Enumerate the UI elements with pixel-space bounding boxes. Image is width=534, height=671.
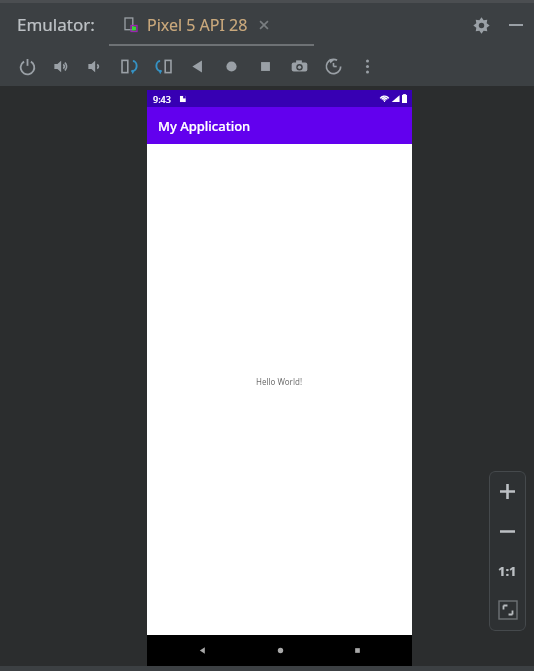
button[interactable]: Close tab (257, 18, 271, 32)
button[interactable]: Rotate left (112, 49, 146, 83)
button[interactable]: Settings (466, 10, 496, 40)
button[interactable]: 1:1 (489, 551, 526, 591)
button[interactable]: Overview (248, 49, 282, 83)
button[interactable]: Home (214, 49, 248, 83)
button[interactable]: Volume down (78, 49, 112, 83)
button[interactable]: Power (10, 49, 44, 83)
button[interactable]: Back (180, 635, 224, 666)
button[interactable]: Recents (335, 635, 379, 666)
button[interactable]: Volume up (44, 49, 78, 83)
button[interactable]: Zoom in (489, 471, 526, 511)
staticText: Pixel 5 API 28 (147, 14, 248, 36)
staticText: 1:1 (498, 562, 517, 580)
button[interactable]: More (350, 49, 384, 83)
button[interactable]: Back (180, 49, 214, 83)
button[interactable]: Pixel 5 API 28 (121, 8, 275, 42)
button[interactable]: Screenshot (282, 49, 316, 83)
button[interactable]: Zoom out (489, 511, 526, 551)
button[interactable]: Rotate right (146, 49, 180, 83)
staticText: My Application (158, 117, 251, 135)
button[interactable]: Home (258, 635, 302, 666)
button[interactable]: Minimize (504, 13, 528, 37)
button[interactable]: Fit to window (489, 591, 526, 629)
staticText: 9:43 (153, 93, 171, 105)
button[interactable]: History (316, 49, 350, 83)
staticText: Hello World! (256, 376, 303, 387)
staticText: Emulator: (17, 13, 95, 36)
